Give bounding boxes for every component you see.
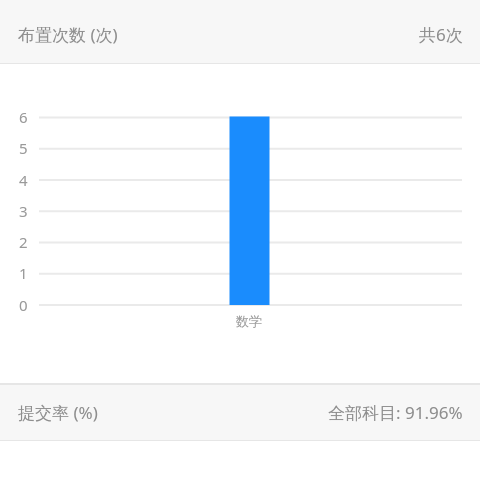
staticText: 全部科目: 91.96%	[328, 401, 463, 424]
staticText: 提交率 (%)	[18, 401, 98, 424]
staticText: 4	[19, 170, 28, 190]
button[interactable]: 布置次数 (次)	[0, 0, 480, 64]
button[interactable]: 提交率 (%)	[0, 383, 480, 441]
staticText: 数学	[236, 313, 262, 329]
staticText: 0	[19, 295, 28, 315]
staticText: 共6次	[419, 23, 463, 46]
staticText: 6	[19, 107, 28, 127]
other: 布置次数柱状图，数学 6 次	[0, 0, 480, 480]
staticText: 2	[19, 232, 28, 252]
staticText: 1	[19, 263, 28, 283]
staticText: 布置次数 (次)	[18, 23, 118, 46]
staticText: 3	[19, 201, 28, 221]
staticText: 5	[19, 138, 28, 158]
